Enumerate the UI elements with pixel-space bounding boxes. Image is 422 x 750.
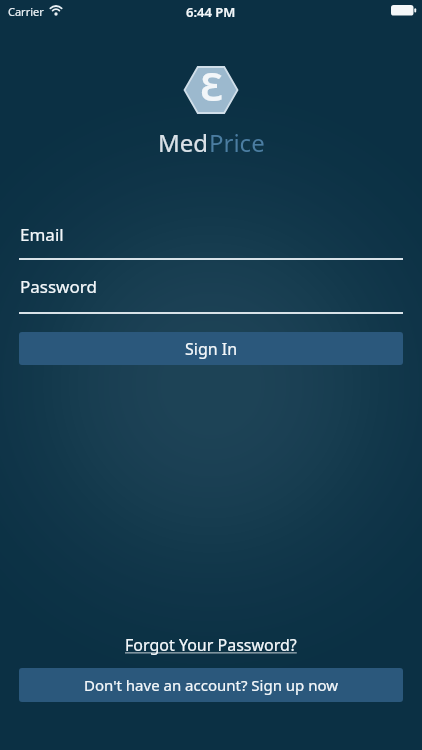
staticText: Sign In	[185, 338, 238, 360]
staticText: Don't have an account? Sign up now	[84, 675, 339, 695]
staticText: 3	[200, 58, 223, 112]
staticText: Carrier	[8, 4, 44, 19]
button[interactable]: Password	[19, 276, 403, 316]
staticText: Password	[20, 275, 97, 298]
staticText: Price	[209, 126, 265, 159]
staticText: 6:44 PM	[186, 3, 236, 21]
button[interactable]: Forgot Your Password?	[125, 634, 297, 656]
button[interactable]: Sign In	[19, 332, 403, 365]
button[interactable]: Don't have an account? Sign up now	[19, 668, 403, 702]
staticText: Email	[20, 223, 64, 246]
button[interactable]: Email	[19, 222, 403, 262]
staticText: Med	[158, 126, 209, 159]
